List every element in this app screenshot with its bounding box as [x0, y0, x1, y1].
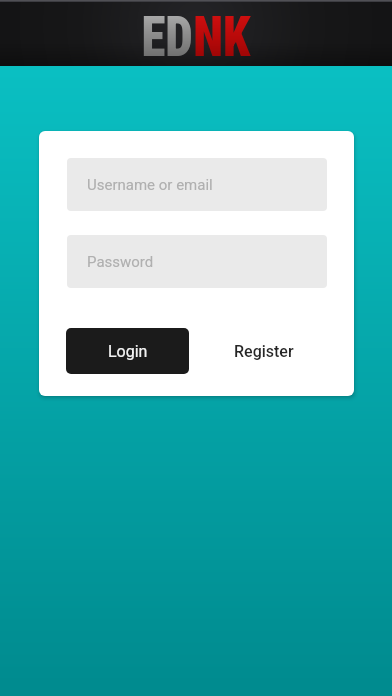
button[interactable]: Username or email [67, 158, 327, 211]
staticText: NK [193, 5, 250, 70]
other: EDNK logo [141, 5, 250, 70]
staticText: Password [87, 253, 154, 271]
button[interactable]: Password [67, 235, 327, 288]
staticText: Register [234, 342, 294, 361]
button[interactable]: Login [66, 328, 189, 374]
staticText: Username or email [87, 176, 213, 194]
button[interactable]: Register [224, 328, 304, 374]
staticText: ED [141, 5, 193, 70]
staticText: Login [108, 342, 148, 361]
